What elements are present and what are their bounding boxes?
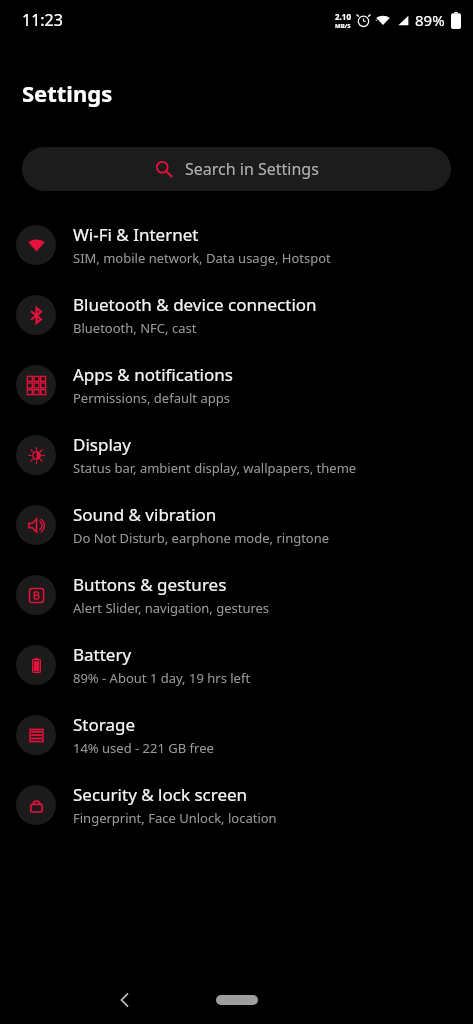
staticText: Security & lock screen: [73, 783, 248, 806]
staticText: Sound & vibration: [73, 503, 217, 526]
staticText: MB/S: [335, 22, 351, 30]
staticText: Display: [73, 433, 131, 456]
staticText: 11:23: [22, 9, 63, 31]
button[interactable]: Buttons & gestures: [0, 560, 473, 630]
button[interactable]: Apps & notifications: [0, 350, 473, 420]
staticText: 2.10: [335, 11, 351, 22]
staticText: 89% - About 1 day, 19 hrs left: [73, 669, 251, 687]
staticText: 14% used - 221 GB free: [73, 739, 214, 757]
staticText: Buttons & gestures: [73, 573, 227, 596]
button[interactable]: Search in Settings: [22, 147, 451, 191]
staticText: Fingerprint, Face Unlock, location: [73, 809, 277, 827]
staticText: Bluetooth, NFC, cast: [73, 319, 197, 337]
staticText: Permissions, default apps: [73, 389, 230, 407]
staticText: 89%: [415, 10, 445, 30]
button[interactable]: Home: [206, 988, 268, 1012]
staticText: Wi-Fi & Internet: [73, 223, 199, 246]
button[interactable]: Wi-Fi & Internet: [0, 210, 473, 280]
button[interactable]: Display: [0, 420, 473, 490]
staticText: Storage: [73, 713, 136, 736]
staticText: SIM, mobile network, Data usage, Hotspot: [73, 249, 331, 267]
staticText: Status bar, ambient display, wallpapers,…: [73, 459, 357, 477]
staticText: Settings: [22, 78, 113, 108]
button[interactable]: Sound & vibration: [0, 490, 473, 560]
staticText: Battery: [73, 643, 132, 666]
button[interactable]: Bluetooth & device connection: [0, 280, 473, 350]
staticText: Apps & notifications: [73, 363, 233, 386]
staticText: Search in Settings: [185, 158, 319, 180]
button[interactable]: Security & lock screen: [0, 770, 473, 840]
staticText: Bluetooth & device connection: [73, 293, 317, 316]
button[interactable]: Back: [108, 983, 142, 1017]
button[interactable]: Storage: [0, 700, 473, 770]
staticText: Alert Slider, navigation, gestures: [73, 599, 270, 617]
staticText: Do Not Disturb, earphone mode, ringtone: [73, 529, 330, 547]
button[interactable]: Battery: [0, 630, 473, 700]
